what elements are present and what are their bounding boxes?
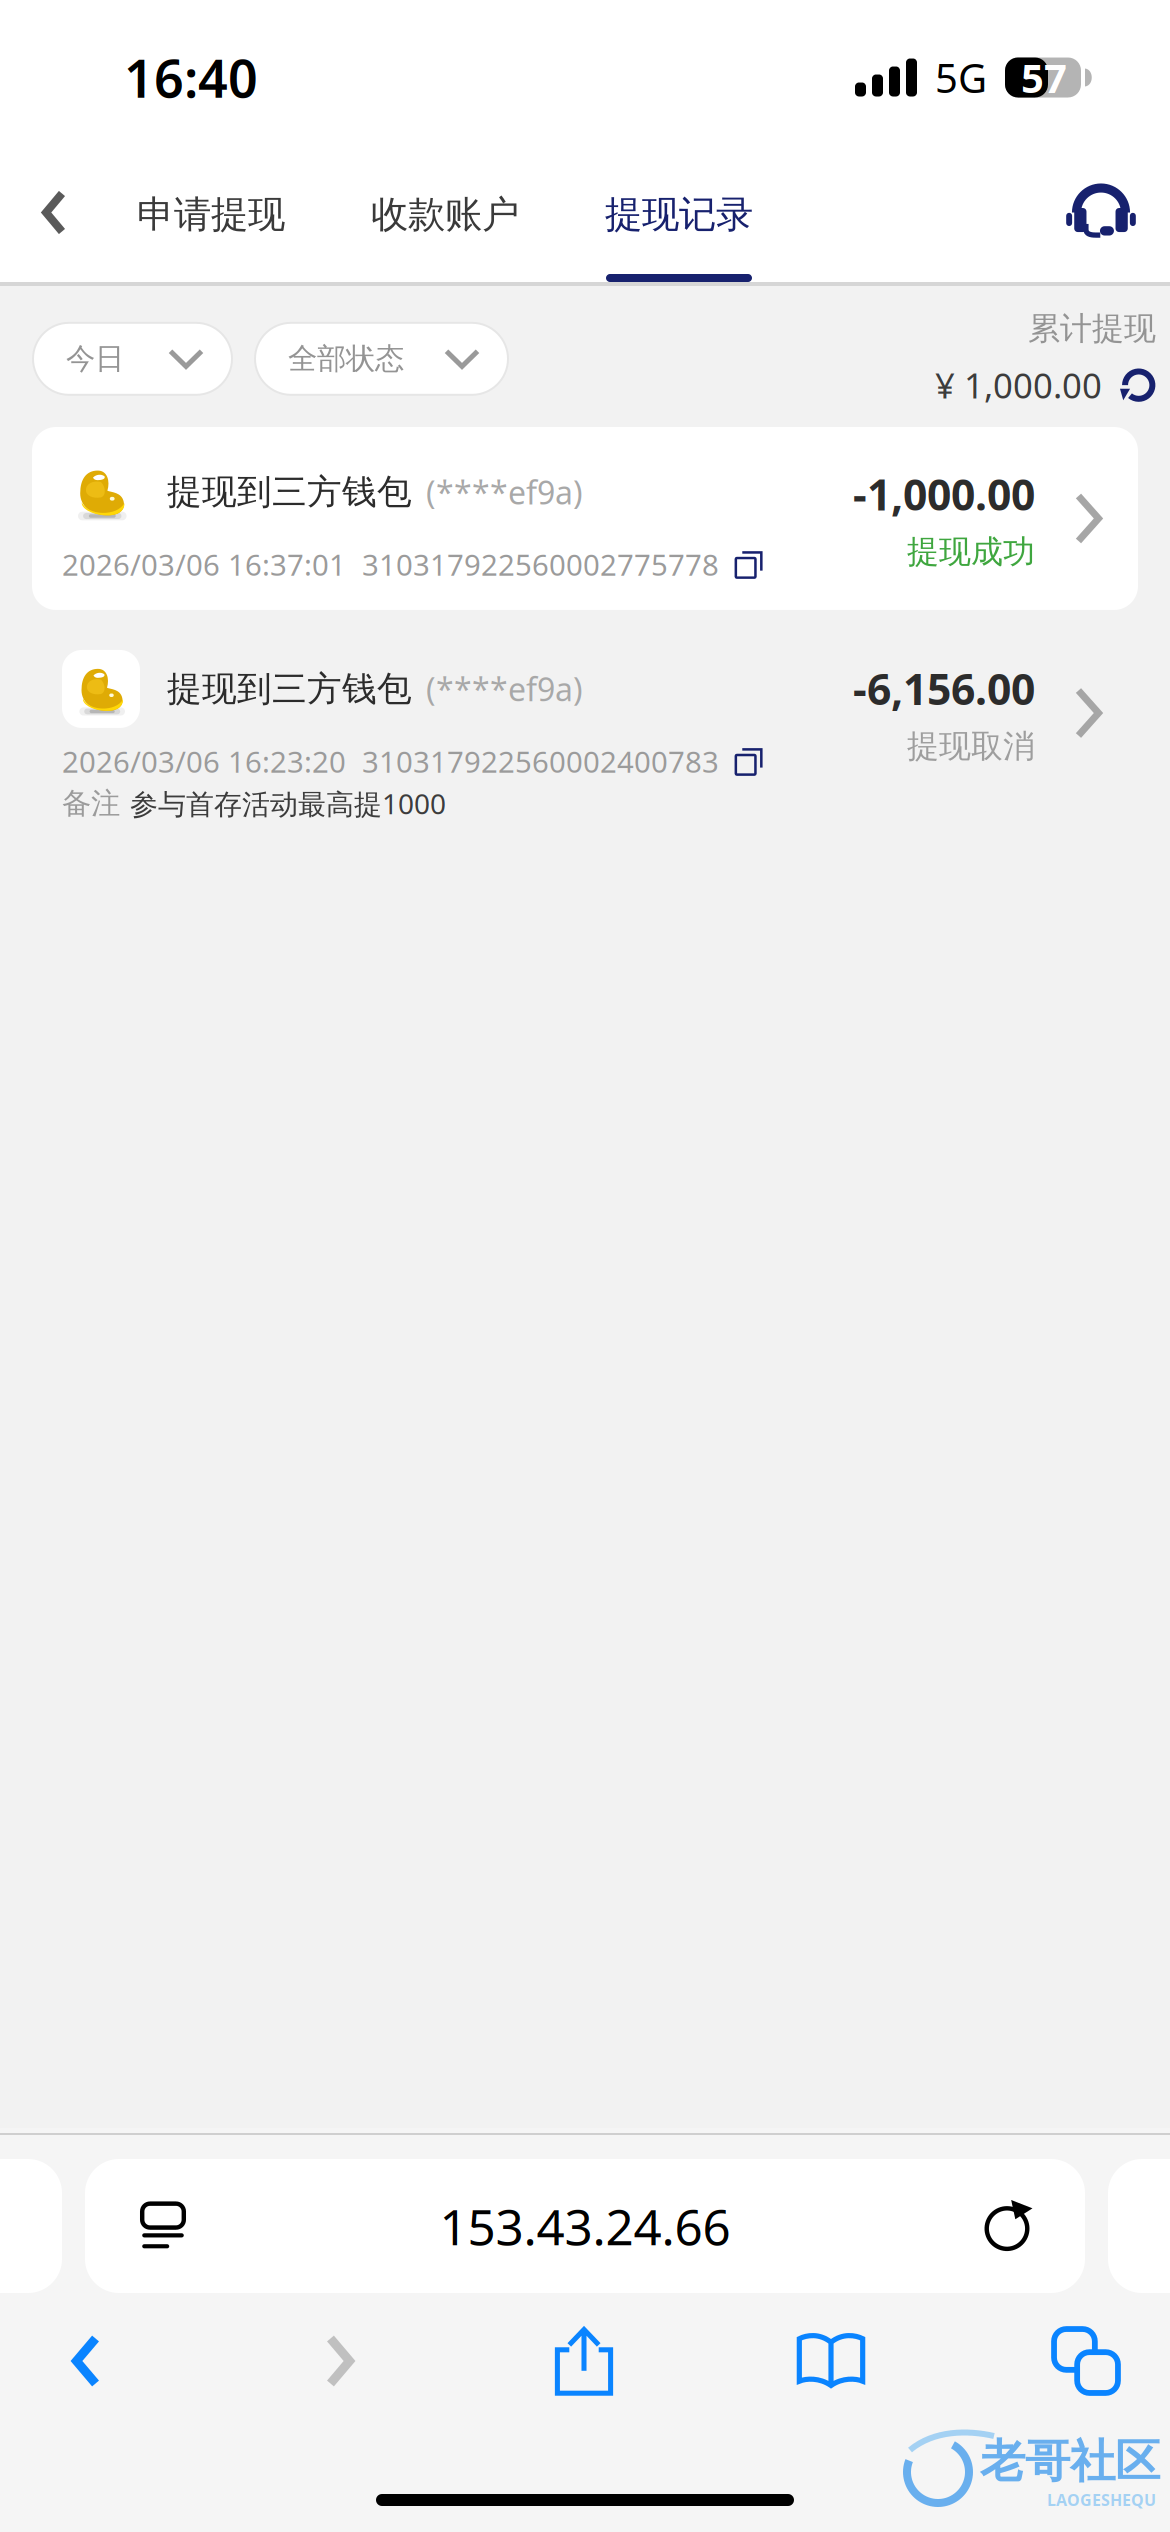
staticText: ¥ 1,000.00 xyxy=(935,362,1102,408)
button[interactable]: 提现到三方钱包 xyxy=(32,624,1138,848)
staticText: 备注 xyxy=(62,785,120,821)
button[interactable]: 提现到三方钱包 xyxy=(32,427,1138,610)
staticText: 老哥社区 xyxy=(980,2433,1160,2489)
staticText: 参与首存活动最高提1000 xyxy=(130,785,446,822)
staticText: 提现取消 xyxy=(907,727,1035,766)
staticText: -6,156.00 xyxy=(853,660,1035,717)
button[interactable]: 全部状态 xyxy=(255,323,508,395)
staticText: LAOGESHEQU xyxy=(1047,2489,1156,2510)
button[interactable]: Back xyxy=(0,2313,172,2409)
staticText: 今日 xyxy=(66,341,124,377)
staticText: (****ef9a) xyxy=(426,668,583,710)
staticText: 提现到三方钱包 xyxy=(167,668,412,710)
staticText: 申请提现 xyxy=(137,192,285,237)
staticText: 57 xyxy=(1021,51,1067,104)
staticText: 153.43.24.66 xyxy=(439,2193,730,2259)
staticText: 全部状态 xyxy=(288,341,404,377)
button[interactable]: Tabs xyxy=(1002,2313,1170,2409)
staticText: 累计提现 xyxy=(1028,309,1156,348)
button[interactable]: 申请提现 xyxy=(94,155,328,282)
button[interactable]: Back xyxy=(0,155,94,282)
staticText: (****ef9a) xyxy=(426,471,583,513)
button[interactable]: 今日 xyxy=(33,323,232,395)
button[interactable]: 收款账户 xyxy=(328,155,562,282)
staticText: -1,000.00 xyxy=(853,465,1035,522)
button[interactable]: Customer service xyxy=(1032,155,1170,282)
staticText: 收款账户 xyxy=(371,192,519,237)
button[interactable]: Refresh xyxy=(1120,367,1156,403)
button[interactable]: Share xyxy=(508,2313,660,2409)
staticText: 提现成功 xyxy=(907,532,1035,571)
staticText: 2026/03/06 16:23:20 31031792256000240078… xyxy=(62,742,719,781)
button[interactable]: Forward xyxy=(172,2313,508,2409)
button[interactable]: 153.43.24.66 xyxy=(85,2159,1085,2293)
staticText: 16:40 xyxy=(124,43,258,112)
button[interactable]: Bookmarks xyxy=(660,2313,1002,2409)
staticText: 提现记录 xyxy=(605,192,753,237)
button[interactable]: 提现记录 xyxy=(562,155,796,282)
staticText: 2026/03/06 16:37:01 31031792256000277577… xyxy=(62,545,719,584)
staticText: 提现到三方钱包 xyxy=(167,471,412,513)
staticText: 5G xyxy=(935,51,987,104)
